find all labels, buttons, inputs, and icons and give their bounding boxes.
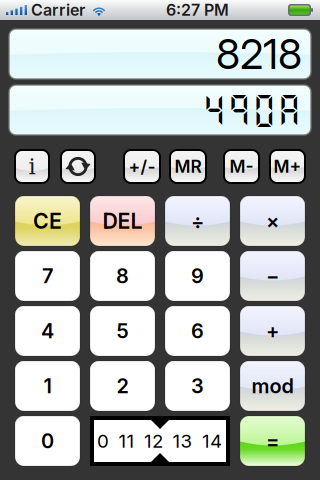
button[interactable]: M+: [270, 150, 305, 183]
staticText: −: [266, 264, 279, 288]
staticText: 0: [41, 429, 54, 453]
staticText: 8: [116, 264, 129, 288]
staticText: 6: [191, 319, 204, 343]
button[interactable]: mod: [240, 361, 305, 411]
staticText: M-: [229, 156, 253, 177]
staticText: DEL: [102, 208, 142, 234]
staticText: 0: [97, 430, 109, 452]
button[interactable]: 5: [90, 306, 155, 356]
button[interactable]: 2: [90, 361, 155, 411]
button[interactable]: +: [240, 306, 305, 356]
button[interactable]: DEL: [90, 196, 155, 246]
button[interactable]: CE: [15, 196, 80, 246]
button[interactable]: Radix: [90, 416, 230, 466]
staticText: 5: [116, 319, 128, 343]
button[interactable]: 1: [15, 361, 80, 411]
staticText: 13: [172, 430, 192, 452]
staticText: +/-: [128, 156, 155, 177]
button[interactable]: Refresh: [61, 150, 95, 183]
staticText: 1: [43, 374, 51, 398]
button[interactable]: =: [240, 416, 305, 466]
button[interactable]: MR: [170, 150, 206, 183]
button[interactable]: 0: [15, 416, 80, 466]
staticText: i: [28, 153, 35, 180]
staticText: 9: [191, 264, 204, 288]
button[interactable]: −: [240, 251, 305, 301]
staticText: 8218: [216, 29, 302, 79]
button[interactable]: 8: [90, 251, 155, 301]
button[interactable]: +/-: [124, 150, 160, 183]
staticText: MR: [174, 156, 201, 177]
staticText: 4: [41, 319, 54, 343]
staticText: 7: [42, 264, 53, 288]
staticText: 12: [144, 430, 163, 452]
staticText: M+: [273, 156, 301, 177]
staticText: 490A: [202, 90, 302, 130]
staticText: CE: [33, 208, 62, 234]
button[interactable]: Info: [15, 150, 49, 183]
staticText: 2: [116, 374, 128, 398]
staticText: +: [266, 319, 279, 343]
button[interactable]: 7: [15, 251, 80, 301]
button[interactable]: 6: [165, 306, 230, 356]
button[interactable]: 3: [165, 361, 230, 411]
staticText: Carrier: [31, 0, 85, 20]
button[interactable]: 9: [165, 251, 230, 301]
staticText: ×: [266, 209, 279, 233]
button[interactable]: 4: [15, 306, 80, 356]
button[interactable]: ×: [240, 196, 305, 246]
staticText: mod: [251, 374, 293, 398]
staticText: =: [266, 429, 279, 453]
button[interactable]: ÷: [165, 196, 230, 246]
button[interactable]: M-: [224, 150, 259, 183]
staticText: ÷: [191, 209, 204, 233]
staticText: 11: [118, 430, 134, 452]
staticText: 6:27 PM: [166, 0, 229, 20]
staticText: 3: [191, 374, 204, 398]
staticText: 14: [202, 430, 222, 452]
